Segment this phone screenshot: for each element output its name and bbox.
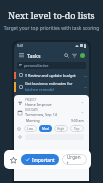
button[interactable]: Tag xyxy=(18,135,22,139)
staticText: Top xyxy=(74,127,80,131)
staticText: Low xyxy=(27,127,34,131)
staticText: 9:41 xyxy=(17,43,24,48)
staticText: Tasks xyxy=(27,52,41,59)
button[interactable]: Star xyxy=(8,155,18,165)
button[interactable]: Important xyxy=(21,154,59,165)
staticText: !! Review and update budget xyxy=(25,73,76,78)
staticText: High xyxy=(57,127,65,131)
staticText: PROJECT xyxy=(25,98,37,102)
button[interactable]: Priority xyxy=(17,127,21,131)
staticText: Next level to-do lists xyxy=(0,9,103,21)
button[interactable]: Sort xyxy=(70,51,78,59)
staticText: ⌄ xyxy=(81,100,84,104)
staticText: ... xyxy=(84,84,87,89)
button[interactable]: !! Review and update budget xyxy=(14,70,89,80)
staticText: Home Improve xyxy=(25,102,52,107)
button[interactable]: Get business estimates for xyxy=(14,80,89,93)
button[interactable]: PROJECT xyxy=(17,97,86,107)
staticText: Target your top priorities with task sco… xyxy=(0,25,103,32)
staticText: Tomorrow, Sep 14 xyxy=(25,112,57,117)
staticText: Morning xyxy=(26,118,40,123)
button[interactable]: Low xyxy=(24,125,37,132)
button[interactable]: Med xyxy=(39,125,52,132)
button[interactable]: Star xyxy=(4,150,91,169)
staticText: Important xyxy=(32,157,55,163)
button[interactable]: Menu xyxy=(17,51,25,59)
button[interactable]: personal/active xyxy=(17,62,86,69)
staticText: Med xyxy=(42,127,49,131)
staticText: 9:00 am xyxy=(71,118,84,123)
button[interactable]: Account xyxy=(78,51,86,59)
button[interactable]: Top xyxy=(70,125,84,132)
staticText: Urgent xyxy=(67,154,82,165)
button[interactable]: DUE DATE xyxy=(17,107,86,117)
staticText: kitchen remodel xyxy=(25,87,54,92)
staticText: personal/active xyxy=(24,63,49,68)
button[interactable]: Urgent xyxy=(62,154,87,165)
staticText: Get business estimates for xyxy=(25,81,73,86)
staticText: ⌄ xyxy=(81,110,84,114)
button[interactable]: Search xyxy=(62,51,70,59)
staticText: ... xyxy=(84,73,87,78)
button[interactable]: High xyxy=(54,125,68,132)
staticText: DUE DATE xyxy=(25,108,39,112)
